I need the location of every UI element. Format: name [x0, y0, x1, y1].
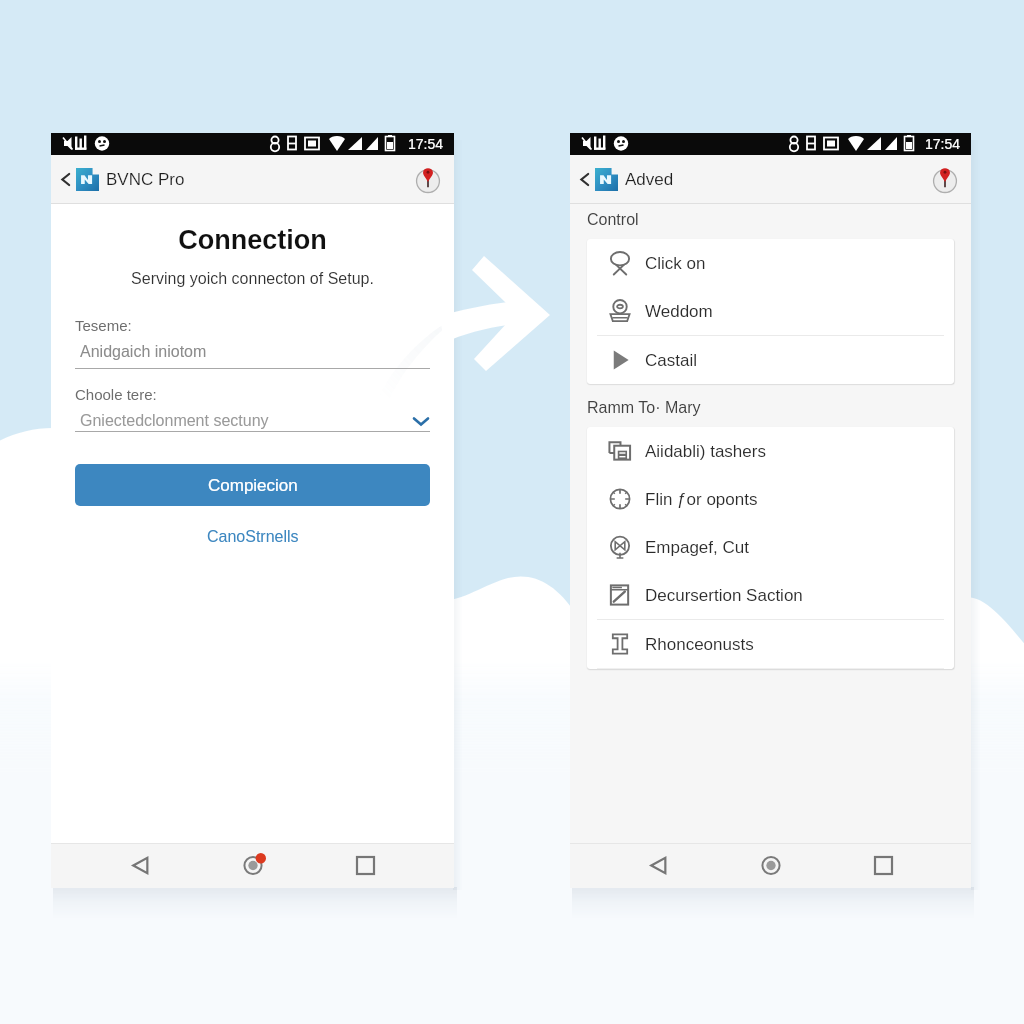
button[interactable]: Recents	[341, 843, 389, 888]
staticText: Serving yoich connecton of Setup.	[51, 270, 454, 288]
staticText: Rhonceonusts	[645, 635, 754, 654]
staticText: Flin ƒor oponts	[645, 490, 758, 509]
button[interactable]: Recents	[859, 843, 907, 888]
button[interactable]: Flin ƒor oponts	[587, 475, 954, 523]
staticText: Teseme:	[75, 317, 132, 334]
button[interactable]: Aiidabli) tashers	[587, 427, 954, 475]
button[interactable]: Click on	[587, 239, 954, 287]
button[interactable]: Location	[927, 161, 963, 197]
staticText: Control	[587, 211, 639, 229]
staticText: Ramm To· Mary	[587, 399, 701, 417]
staticText: Gniectedclonment sectuny	[80, 412, 269, 430]
button[interactable]: Home	[229, 843, 277, 888]
staticText: Compiecion	[208, 476, 298, 495]
staticText: Decursertion Saction	[645, 586, 803, 605]
button[interactable]: Home	[747, 843, 795, 888]
staticText: 17:54	[408, 136, 444, 152]
button[interactable]: Back	[574, 169, 594, 189]
staticText: Aiidabli) tashers	[645, 442, 766, 461]
button[interactable]: Rhonceonusts	[587, 620, 954, 668]
button[interactable]: CanoStrnells	[75, 522, 430, 552]
staticText: 17:54	[925, 136, 961, 152]
staticText: Adved	[625, 170, 674, 189]
button[interactable]: Back	[634, 843, 682, 888]
button[interactable]: Compiecion	[75, 464, 430, 506]
button[interactable]: Location	[410, 161, 446, 197]
button[interactable]: Back	[116, 843, 164, 888]
staticText: Weddom	[645, 302, 713, 321]
staticText: Empagef, Cut	[645, 538, 749, 557]
staticText: Anidgaich iniotom	[80, 343, 207, 361]
button[interactable]: Empagef, Cut	[587, 523, 954, 571]
staticText: Castail	[645, 351, 697, 370]
staticText: Click on	[645, 254, 706, 273]
button[interactable]: Back	[55, 169, 75, 189]
button[interactable]: Castail	[587, 336, 954, 384]
staticText: CanoStrnells	[207, 528, 299, 546]
staticText: Choole tere:	[75, 386, 157, 403]
staticText: BVNC Pro	[106, 170, 185, 189]
button[interactable]: Weddom	[587, 287, 954, 335]
button[interactable]: Decursertion Saction	[587, 571, 954, 619]
staticText: Connection	[51, 225, 454, 255]
